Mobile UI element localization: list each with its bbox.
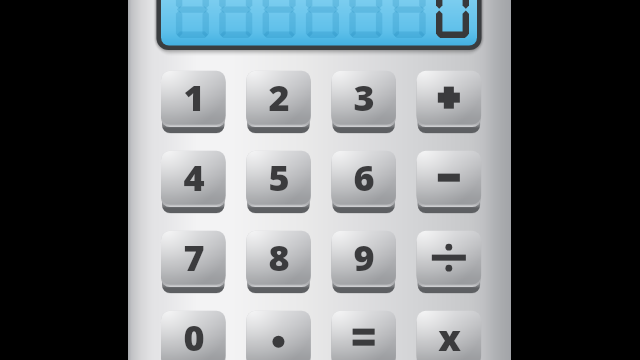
staticText: 9 xyxy=(353,233,375,282)
button[interactable]: 0 xyxy=(161,311,226,360)
staticText: 2 xyxy=(268,73,290,122)
button[interactable]: 4 xyxy=(161,151,226,213)
button[interactable]: 6 xyxy=(331,151,396,213)
button[interactable]: 2 xyxy=(246,71,311,133)
staticText: 0 xyxy=(183,313,205,360)
staticText: 3 xyxy=(353,73,375,122)
button[interactable]: 9 xyxy=(331,231,396,293)
button[interactable]: Decimal point xyxy=(246,311,311,360)
staticText: x xyxy=(438,313,461,360)
button[interactable]: x xyxy=(417,311,482,360)
button[interactable]: Plus xyxy=(417,71,482,133)
button[interactable]: Minus xyxy=(417,151,482,213)
button[interactable]: 5 xyxy=(246,151,311,213)
button[interactable]: 1 xyxy=(161,71,226,133)
staticText: 8 xyxy=(268,233,290,282)
button[interactable]: 3 xyxy=(331,71,396,133)
staticText: 1 xyxy=(183,73,205,122)
button[interactable]: Equals xyxy=(331,311,396,360)
button[interactable]: Divide xyxy=(417,231,482,293)
button[interactable]: 8 xyxy=(246,231,311,293)
staticText: 4 xyxy=(183,153,205,202)
staticText: 7 xyxy=(183,233,205,282)
staticText: 6 xyxy=(353,153,375,202)
staticText: 5 xyxy=(268,153,290,202)
button[interactable]: 7 xyxy=(161,231,226,293)
